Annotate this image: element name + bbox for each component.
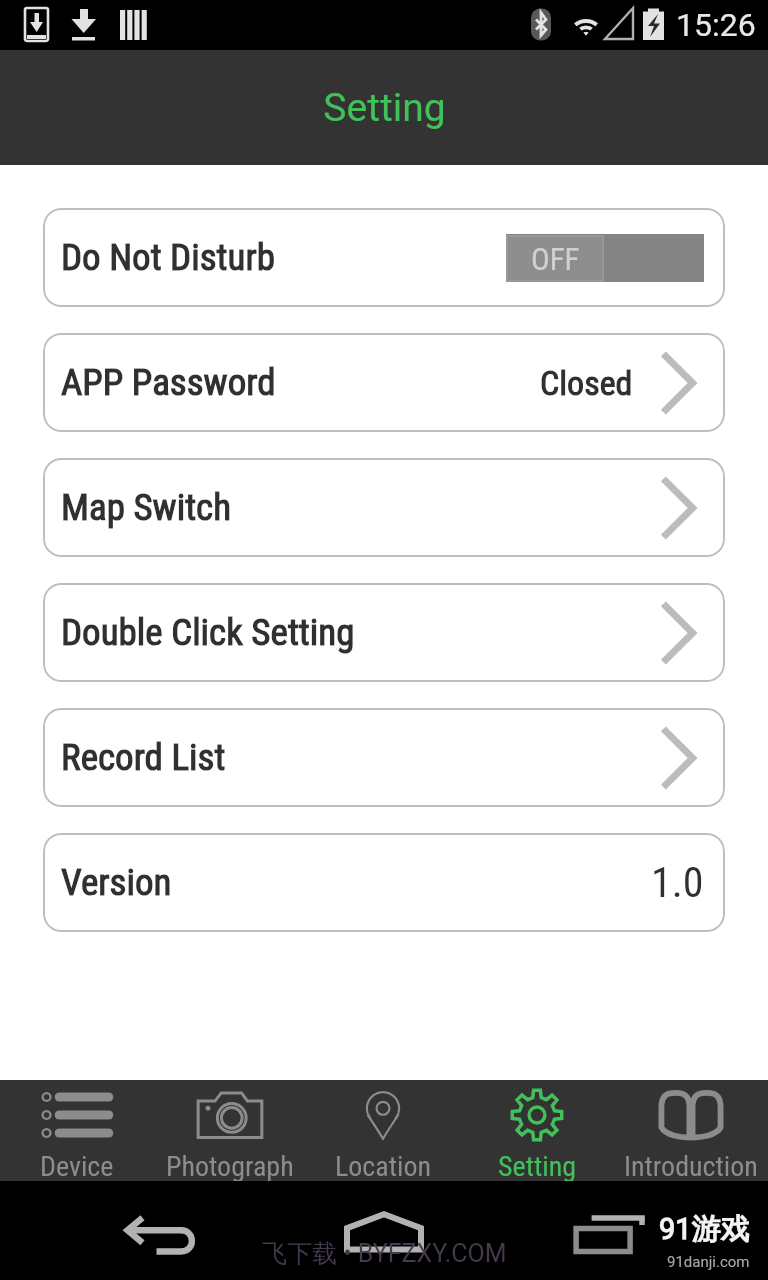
button[interactable]: Setting bbox=[460, 1080, 614, 1181]
staticText: Record List bbox=[61, 736, 226, 779]
button[interactable]: Setting bbox=[0, 50, 768, 165]
button[interactable]: Version bbox=[43, 833, 725, 932]
staticText: 1.0 bbox=[651, 858, 704, 907]
button[interactable]: Do Not Disturb bbox=[43, 208, 725, 307]
staticText: Closed bbox=[540, 363, 633, 403]
staticText: OFF bbox=[531, 241, 580, 277]
staticText: Location bbox=[335, 1150, 432, 1181]
button[interactable]: Introduction bbox=[614, 1080, 768, 1181]
button[interactable]: Location bbox=[306, 1080, 460, 1181]
staticText: Map Switch bbox=[61, 486, 232, 529]
button[interactable]: Device bbox=[0, 1080, 153, 1181]
button[interactable]: Record List bbox=[43, 708, 725, 807]
staticText: Device bbox=[40, 1150, 114, 1181]
staticText: Photograph bbox=[166, 1150, 294, 1181]
staticText: 飞下载 • BYFZXY.COM bbox=[262, 1238, 507, 1269]
staticText: Introduction bbox=[624, 1150, 758, 1181]
staticText: Setting bbox=[498, 1150, 577, 1181]
button[interactable]: APP Password bbox=[43, 333, 725, 432]
staticText: Double Click Setting bbox=[61, 611, 355, 654]
staticText: 15:26 bbox=[676, 6, 756, 44]
staticText: 91游戏 bbox=[659, 1211, 750, 1248]
button[interactable]: Photograph bbox=[153, 1080, 306, 1181]
staticText: Setting bbox=[323, 85, 446, 131]
button[interactable]: Double Click Setting bbox=[43, 583, 725, 682]
staticText: Do Not Disturb bbox=[61, 236, 275, 279]
staticText: Version bbox=[61, 861, 172, 904]
button[interactable]: Map Switch bbox=[43, 458, 725, 557]
staticText: 91danji.com bbox=[667, 1253, 750, 1271]
button[interactable]: Do Not Disturb switch, off bbox=[506, 234, 704, 282]
staticText: APP Password bbox=[61, 361, 276, 404]
